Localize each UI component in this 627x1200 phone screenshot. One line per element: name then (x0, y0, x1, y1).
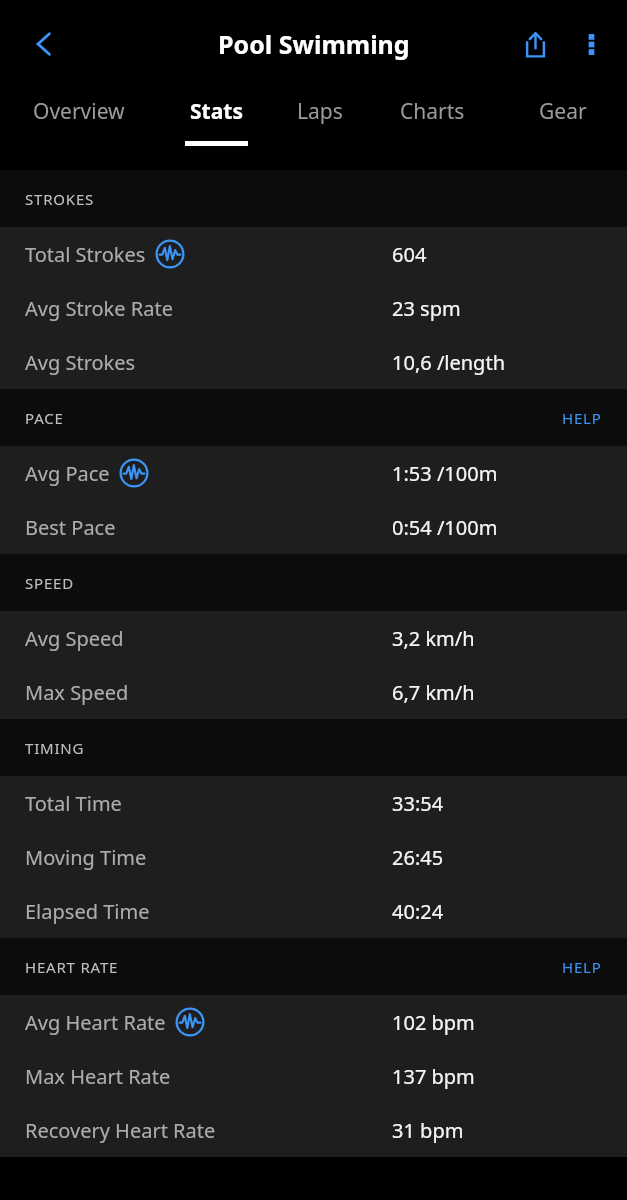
button[interactable]: Total Time (0, 776, 627, 830)
staticText: Avg Pace (25, 460, 110, 487)
button[interactable]: Moving Time (0, 830, 627, 884)
staticText: 26:45 (392, 844, 444, 871)
staticText: Gear (539, 97, 587, 126)
staticText: TIMING (25, 738, 85, 758)
staticText: SPEED (25, 573, 74, 593)
staticText: PACE (25, 408, 64, 428)
staticText: Elapsed Time (25, 898, 150, 925)
staticText: Max Speed (25, 679, 129, 706)
staticText: Avg Stroke Rate (25, 295, 173, 322)
staticText: 137 bpm (392, 1063, 475, 1090)
staticText: Pool Swimming (218, 27, 410, 61)
staticText: 604 (392, 241, 427, 268)
staticText: 33:54 (392, 790, 444, 817)
staticText: 6,7 km/h (392, 679, 475, 706)
staticText: 40:24 (392, 898, 444, 925)
staticText: Laps (297, 97, 343, 126)
staticText: STROKES (25, 189, 95, 209)
button[interactable]: Total Strokes (0, 227, 627, 281)
staticText: Charts (400, 97, 465, 126)
button[interactable]: More options (563, 16, 619, 72)
button[interactable]: Max Heart Rate (0, 1049, 627, 1103)
button[interactable]: Avg Heart Rate (0, 995, 627, 1049)
staticText: Stats (190, 97, 243, 126)
button[interactable]: Avg Speed (0, 611, 627, 665)
button[interactable]: Back (16, 16, 72, 72)
staticText: Moving Time (25, 844, 147, 871)
staticText: Avg Speed (25, 625, 124, 652)
staticText: 3,2 km/h (392, 625, 475, 652)
button[interactable]: Share (507, 16, 563, 72)
staticText: HEART RATE (25, 957, 119, 977)
button[interactable]: Avg Pace (0, 446, 627, 500)
staticText: Avg Strokes (25, 349, 136, 376)
button[interactable]: Stats (157, 88, 276, 170)
button[interactable]: Avg Strokes (0, 335, 627, 389)
button[interactable]: Elapsed Time (0, 884, 627, 938)
staticText: 23 spm (392, 295, 461, 322)
button[interactable]: Avg Stroke Rate (0, 281, 627, 335)
button[interactable]: Overview (19, 88, 138, 170)
staticText: Total Time (25, 790, 122, 817)
staticText: Overview (33, 97, 125, 126)
staticText: 10,6 /length (392, 349, 505, 376)
button[interactable]: Gear (503, 88, 622, 170)
staticText: 1:53 /100m (392, 460, 498, 487)
button[interactable]: Recovery Heart Rate (0, 1103, 627, 1157)
staticText: 31 bpm (392, 1117, 464, 1144)
staticText: Best Pace (25, 514, 116, 541)
staticText: 0:54 /100m (392, 514, 498, 541)
button[interactable]: Laps (260, 88, 379, 170)
button[interactable]: Charts (373, 88, 492, 170)
staticText: 102 bpm (392, 1009, 475, 1036)
staticText: Total Strokes (25, 241, 146, 268)
button[interactable]: Best Pace (0, 500, 627, 554)
staticText: HELP (562, 957, 602, 977)
button[interactable]: Max Speed (0, 665, 627, 719)
button[interactable]: HELP (537, 389, 627, 446)
staticText: HELP (562, 408, 602, 428)
staticText: Avg Heart Rate (25, 1009, 166, 1036)
button[interactable]: HELP (537, 938, 627, 995)
staticText: Max Heart Rate (25, 1063, 171, 1090)
staticText: Recovery Heart Rate (25, 1117, 216, 1144)
